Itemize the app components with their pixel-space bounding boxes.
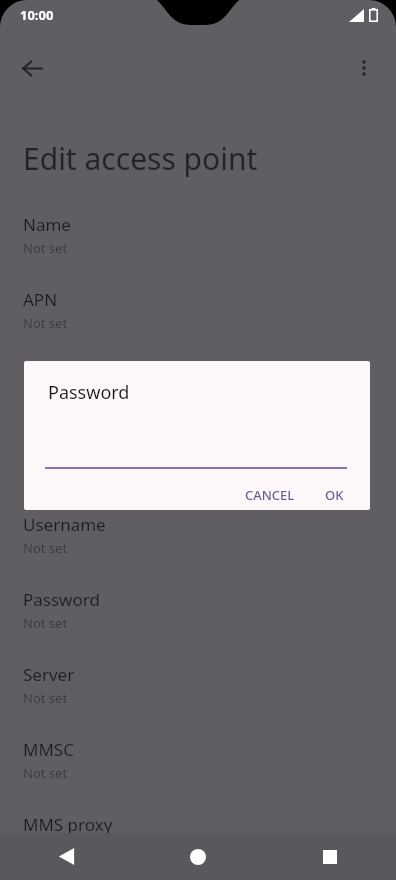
staticText: Not set — [23, 539, 68, 557]
staticText: Password — [48, 380, 130, 405]
button[interactable]: MMSC — [0, 734, 396, 809]
staticText: Server — [23, 663, 75, 686]
staticText: Name — [23, 213, 71, 236]
button[interactable]: CANCEL — [237, 479, 303, 510]
staticText: CANCEL — [245, 486, 295, 503]
button[interactable]: More options — [342, 46, 386, 90]
staticText: APN — [23, 288, 58, 311]
button[interactable]: APN — [0, 284, 396, 359]
button[interactable]: Home — [132, 833, 264, 880]
staticText: Edit access point — [23, 138, 258, 179]
button[interactable]: OK — [317, 479, 352, 510]
button[interactable]: Navigate up — [10, 46, 54, 90]
button[interactable]: Server — [0, 659, 396, 734]
staticText: Username — [23, 513, 106, 536]
staticText: OK — [325, 486, 344, 503]
button[interactable]: Name — [0, 209, 396, 284]
staticText: Not set — [23, 614, 68, 632]
staticText: Not set — [23, 689, 68, 707]
staticText: Proxy — [23, 363, 68, 386]
staticText: 10:00 — [20, 6, 54, 24]
staticText: Not set — [23, 464, 68, 482]
staticText: MMS proxy — [23, 813, 113, 836]
button[interactable]: Port — [0, 434, 396, 509]
staticText: Not set — [23, 314, 68, 332]
button[interactable]: MMS proxy — [0, 809, 396, 880]
button[interactable]: Password — [0, 584, 396, 659]
button[interactable] — [45, 431, 347, 469]
button[interactable]: Back — [0, 833, 132, 880]
staticText: Not set — [23, 839, 68, 857]
staticText: MMSC — [23, 738, 74, 761]
staticText: Not set — [23, 764, 68, 782]
staticText: Not set — [23, 389, 68, 407]
button[interactable]: Recent apps — [264, 833, 396, 880]
staticText: Password — [23, 588, 100, 611]
button[interactable]: Proxy — [0, 359, 396, 434]
staticText: Not set — [23, 239, 68, 257]
staticText: Port — [23, 438, 57, 461]
button[interactable]: Username — [0, 509, 396, 584]
